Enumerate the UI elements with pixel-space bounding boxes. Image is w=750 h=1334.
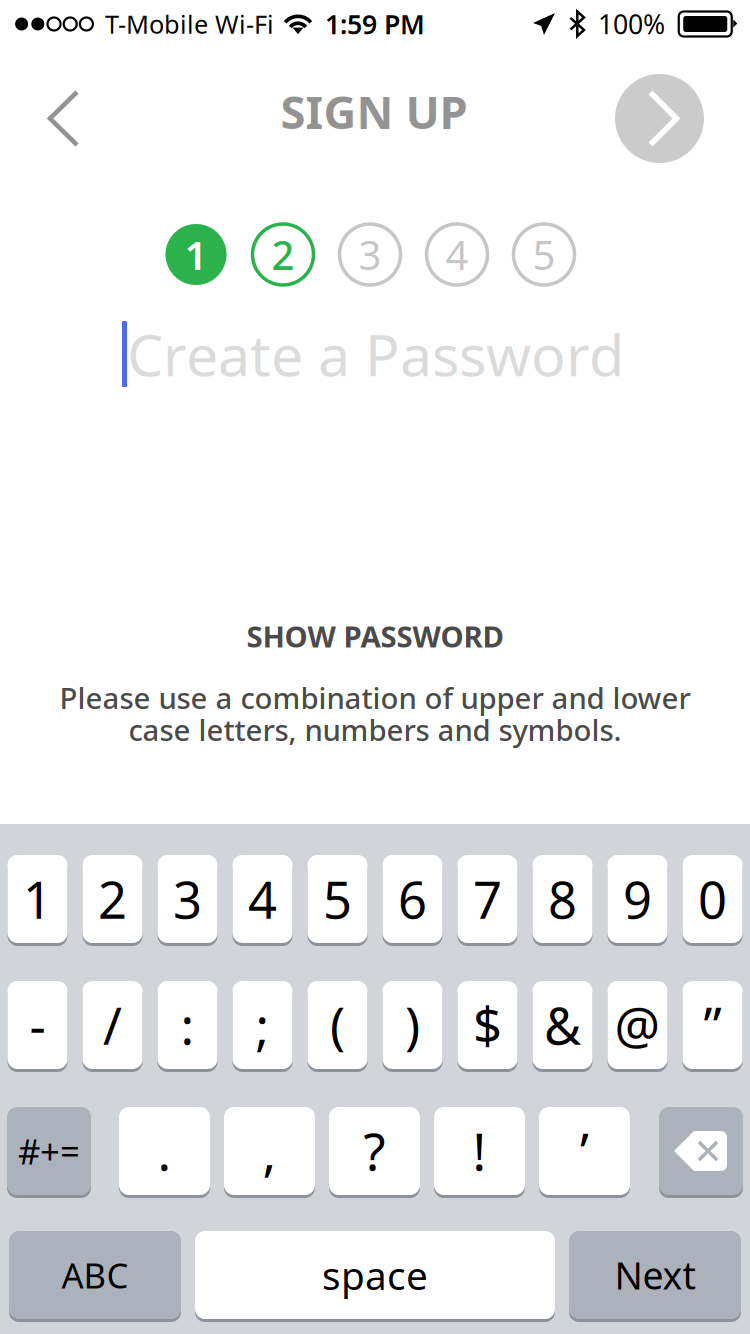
staticText: 3 (358, 228, 381, 281)
button[interactable]: 5 (513, 224, 574, 285)
staticText: Create a Password (127, 316, 624, 392)
staticText: : (180, 991, 194, 1059)
button[interactable]: & (532, 981, 592, 1069)
staticText: space (322, 1249, 428, 1301)
staticText: , (262, 1117, 276, 1185)
button[interactable]: 4 (426, 224, 487, 285)
button[interactable]: ! (434, 1107, 525, 1195)
staticText: - (29, 991, 45, 1059)
staticText: T-Mobile Wi-Fi (105, 7, 274, 41)
button[interactable]: ; (232, 981, 292, 1069)
button[interactable]: $ (457, 981, 517, 1069)
button[interactable]: SHOW PASSWORD (0, 616, 750, 656)
button[interactable]: ? (329, 1107, 420, 1195)
staticText: 0 (698, 865, 727, 933)
staticText: 5 (532, 228, 555, 281)
button[interactable]: 8 (532, 855, 592, 943)
button[interactable]: ’ (539, 1107, 630, 1195)
staticText: 2 (271, 228, 294, 281)
button[interactable]: 5 (307, 855, 367, 943)
button[interactable]: Next (569, 1231, 741, 1319)
staticText: 9 (623, 865, 652, 933)
staticText: 5 (323, 865, 352, 933)
staticText: SHOW PASSWORD (246, 617, 503, 656)
staticText: #+= (18, 1128, 80, 1174)
staticText: ” (703, 991, 721, 1059)
button[interactable]: Create a Password (0, 316, 750, 392)
staticText: 1:59 PM (325, 6, 425, 42)
staticText: case letters, numbers and symbols. (128, 710, 621, 749)
staticText: Please use a combination of upper and lo… (59, 678, 690, 717)
staticText: ? (363, 1117, 385, 1185)
staticText: ! (472, 1117, 486, 1185)
staticText: 2 (98, 865, 127, 933)
staticText: ABC (61, 1252, 128, 1298)
button[interactable]: 0 (682, 855, 742, 943)
staticText: $ (473, 991, 502, 1059)
button[interactable]: 2 (252, 224, 313, 285)
button[interactable]: 1 (7, 855, 67, 943)
button[interactable]: 2 (82, 855, 142, 943)
button[interactable]: space (195, 1231, 555, 1319)
button[interactable]: Delete (659, 1107, 743, 1195)
staticText: 7 (473, 865, 502, 933)
staticText: Next (614, 1250, 695, 1300)
staticText: ) (405, 991, 420, 1059)
staticText: 100% (598, 6, 665, 42)
staticText: & (544, 991, 581, 1059)
staticText: 3 (173, 865, 202, 933)
staticText: . (157, 1117, 171, 1185)
button[interactable]: #+= (7, 1107, 91, 1195)
button[interactable]: ( (307, 981, 367, 1069)
button[interactable]: ) (382, 981, 442, 1069)
staticText: 4 (445, 228, 468, 281)
button[interactable]: : (157, 981, 217, 1069)
staticText: 4 (248, 865, 277, 933)
button[interactable]: 3 (339, 224, 400, 285)
staticText: SIGN UP (280, 81, 467, 142)
staticText: 1 (184, 228, 207, 281)
button[interactable]: Back (0, 48, 127, 189)
staticText: 6 (398, 865, 427, 933)
button[interactable]: 6 (382, 855, 442, 943)
staticText: ( (330, 991, 345, 1059)
button[interactable]: 4 (232, 855, 292, 943)
button[interactable]: 9 (607, 855, 667, 943)
button[interactable]: ” (682, 981, 742, 1069)
staticText: ; (255, 991, 269, 1059)
button[interactable]: / (82, 981, 142, 1069)
button[interactable]: . (119, 1107, 210, 1195)
staticText: 8 (548, 865, 577, 933)
button[interactable]: Next step (613, 48, 750, 189)
button[interactable]: @ (607, 981, 667, 1069)
button[interactable]: 3 (157, 855, 217, 943)
staticText: @ (614, 991, 660, 1059)
button[interactable]: , (224, 1107, 315, 1195)
staticText: 1 (23, 865, 52, 933)
button[interactable]: 7 (457, 855, 517, 943)
staticText: / (103, 991, 122, 1059)
button[interactable]: 1 (165, 224, 226, 285)
button[interactable]: ABC (9, 1231, 181, 1319)
button[interactable]: - (7, 981, 67, 1069)
staticText: ’ (580, 1117, 589, 1185)
